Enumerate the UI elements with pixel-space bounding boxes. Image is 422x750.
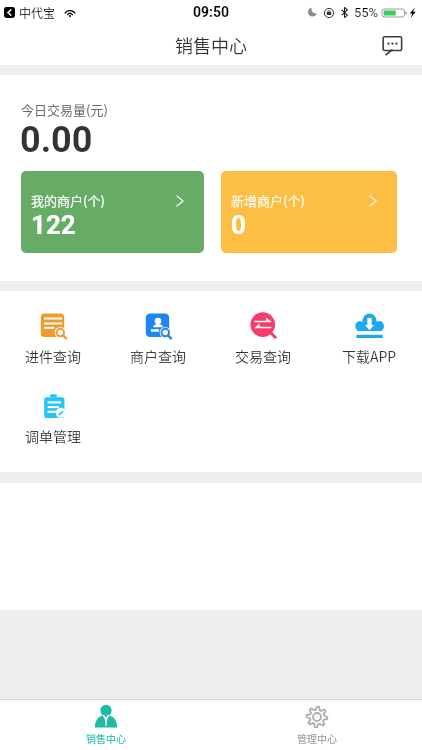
staticText: 122 bbox=[31, 210, 76, 240]
staticText: 0 bbox=[231, 210, 246, 240]
button[interactable]: 下载APP bbox=[316, 312, 422, 366]
button[interactable]: 商户查询 bbox=[105, 312, 210, 366]
staticText: 今日交易量(元) bbox=[21, 100, 108, 119]
staticText: 管理中心 bbox=[297, 731, 337, 745]
button[interactable]: 管理中心 bbox=[211, 700, 422, 750]
staticText: 调单管理 bbox=[25, 426, 81, 446]
button[interactable]: 新增商户(个) bbox=[221, 171, 397, 253]
staticText: 交易查询 bbox=[235, 346, 291, 366]
staticText: 中代宝 bbox=[19, 4, 56, 21]
button[interactable]: Messages bbox=[378, 31, 406, 59]
button[interactable]: 调单管理 bbox=[0, 392, 105, 446]
button[interactable]: 我的商户(个) bbox=[21, 171, 204, 253]
staticText: 下载APP bbox=[342, 346, 397, 366]
staticText: 新增商户(个) bbox=[231, 191, 305, 210]
button[interactable]: 交易查询 bbox=[210, 312, 316, 366]
staticText: 55% bbox=[354, 5, 379, 20]
staticText: 0.00 bbox=[20, 119, 93, 161]
staticText: 我的商户(个) bbox=[31, 191, 105, 210]
staticText: 销售中心 bbox=[86, 731, 126, 745]
staticText: 09:50 bbox=[193, 4, 230, 20]
button[interactable]: 进件查询 bbox=[0, 312, 105, 366]
button[interactable]: 销售中心 bbox=[0, 700, 211, 750]
staticText: 商户查询 bbox=[130, 346, 186, 366]
staticText: 销售中心 bbox=[175, 32, 247, 58]
staticText: 进件查询 bbox=[25, 346, 81, 366]
